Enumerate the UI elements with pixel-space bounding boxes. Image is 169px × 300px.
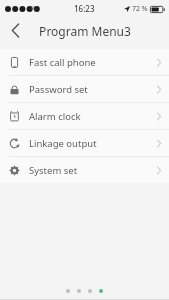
staticText: 72 % [132,4,148,14]
button[interactable]: Linkage output [0,130,169,156]
staticText: Password set [29,83,88,96]
staticText: Fast call phone [29,56,96,69]
button[interactable]: Fast call phone [0,49,169,75]
staticText: 16:23 [74,3,95,14]
staticText: 4G [30,5,37,12]
button[interactable]: Page 4 [99,289,103,293]
button[interactable]: System set [0,157,169,183]
button[interactable]: Page 3 [88,289,92,293]
staticText: System set [29,164,78,177]
button[interactable]: Page 2 [77,289,81,293]
button[interactable]: Page 1 [66,289,70,293]
button[interactable]: Password set [0,76,169,102]
button[interactable]: Back [0,17,30,44]
staticText: Program Menu3 [39,23,131,39]
button[interactable]: Alarm clock [0,103,169,129]
staticText: Linkage output [29,137,97,150]
staticText: Alarm clock [29,110,81,123]
